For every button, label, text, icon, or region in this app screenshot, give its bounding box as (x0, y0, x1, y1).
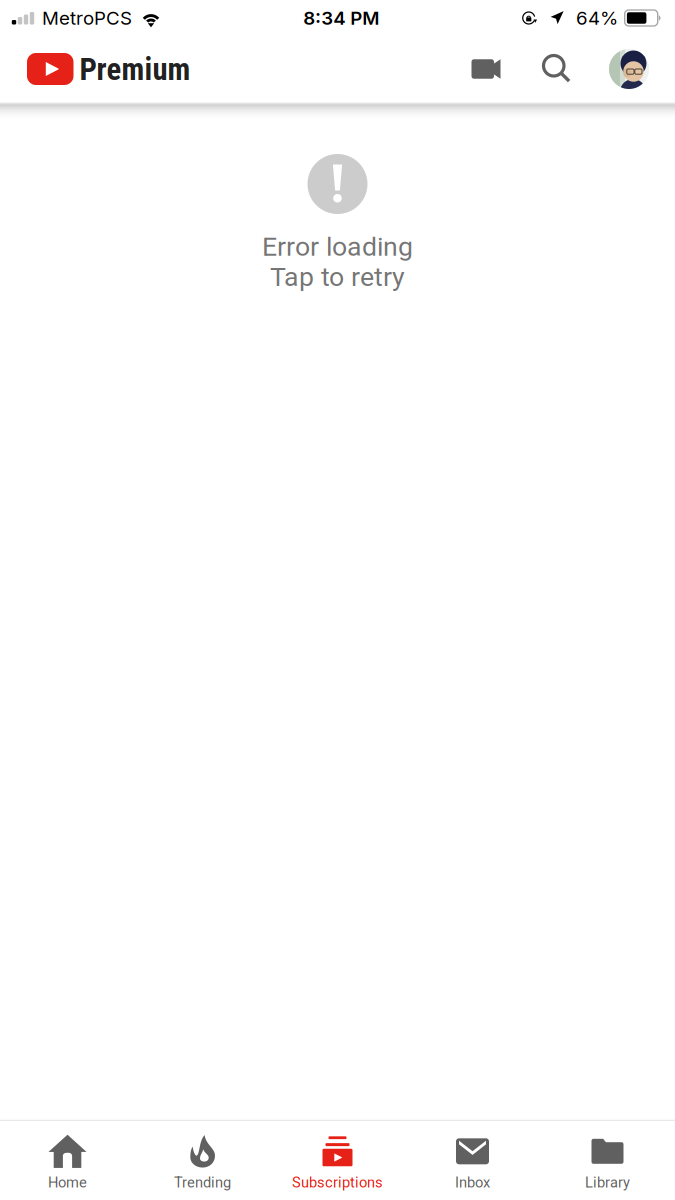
button[interactable]: Library (540, 1121, 675, 1200)
staticText: Inbox (455, 1174, 490, 1191)
button[interactable]: Inbox (405, 1121, 540, 1200)
staticText: Tap to retry (270, 261, 405, 293)
staticText: Library (585, 1174, 630, 1191)
button[interactable]: Premium (27, 51, 190, 87)
button[interactable]: Create (460, 43, 512, 95)
staticText: 64% (576, 7, 618, 29)
button[interactable]: Home (0, 1121, 135, 1200)
staticText: MetroPCS (42, 7, 132, 29)
button[interactable]: Search (532, 43, 582, 95)
staticText: Trending (174, 1174, 231, 1191)
button[interactable]: Subscriptions (270, 1121, 405, 1200)
staticText: Subscriptions (292, 1174, 383, 1191)
staticText: Home (48, 1174, 87, 1191)
button[interactable]: Error loading (262, 154, 413, 292)
button[interactable]: Account (603, 43, 655, 95)
staticText: 8:34 PM (303, 7, 379, 29)
staticText: Error loading (262, 231, 413, 262)
staticText: Premium (79, 51, 190, 87)
button[interactable]: Trending (135, 1121, 270, 1200)
